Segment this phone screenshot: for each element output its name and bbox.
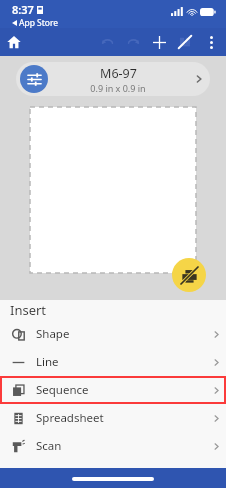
button[interactable]: Snap off	[172, 29, 198, 55]
staticText: 0.9 in x 0.9 in	[90, 82, 146, 94]
button[interactable]: Redo	[120, 29, 146, 55]
button[interactable]: Line	[0, 348, 226, 376]
button[interactable]: Undo	[94, 29, 120, 55]
staticText: M6-97	[100, 65, 137, 82]
button[interactable]: Print disabled	[172, 258, 206, 292]
staticText: App Store	[19, 17, 59, 28]
staticText: 8:37	[12, 2, 34, 17]
staticText: Line	[36, 354, 59, 370]
button[interactable]: Home	[0, 28, 28, 56]
button[interactable]: Shape	[0, 320, 226, 348]
staticText: Sequence	[36, 382, 89, 398]
staticText: Scan	[36, 438, 62, 454]
staticText: Insert	[10, 301, 47, 319]
button[interactable]: Scan	[0, 432, 226, 460]
button[interactable]: Spreadsheet	[0, 404, 226, 432]
staticText: Shape	[36, 326, 70, 342]
button[interactable]: M6-97	[16, 62, 210, 96]
button[interactable]: Add	[146, 29, 172, 55]
button[interactable]: Sequence	[0, 376, 226, 404]
button[interactable]: More options	[198, 29, 224, 55]
staticText: Spreadsheet	[36, 410, 104, 426]
